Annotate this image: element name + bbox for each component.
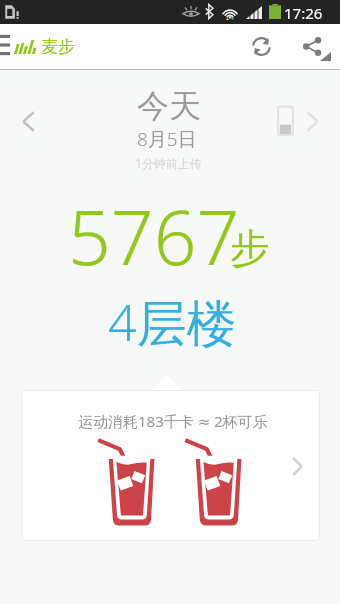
button[interactable]: Next day — [296, 105, 328, 137]
staticText: 步 — [230, 223, 270, 273]
button[interactable]: Refresh — [247, 32, 275, 60]
staticText: 1分钟前上传 — [135, 155, 202, 171]
button[interactable]: Device battery — [270, 100, 301, 140]
button[interactable]: Previous day — [12, 105, 44, 137]
staticText: 4层楼 — [108, 288, 237, 356]
staticText: 5767 — [68, 185, 240, 287]
button[interactable]: Share — [298, 32, 326, 60]
button[interactable]: Menu — [0, 32, 14, 58]
staticText: 8月5日 — [137, 126, 197, 152]
button[interactable]: 运动消耗183千卡 ≈ 2杯可乐 — [21, 390, 320, 541]
staticText: 运动消耗183千卡 ≈ 2杯可乐 — [78, 411, 268, 431]
staticText: 17:26 — [284, 3, 323, 23]
staticText: 今天 — [137, 86, 201, 126]
staticText: 麦步 — [41, 36, 75, 57]
